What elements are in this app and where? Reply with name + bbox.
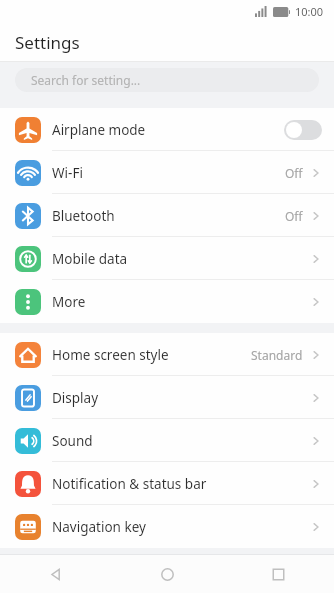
- button[interactable]: Wi-Fi: [0, 151, 334, 194]
- button[interactable]: Navigation key: [0, 505, 334, 548]
- staticText: Bluetooth: [52, 207, 285, 225]
- staticText: Standard: [251, 347, 303, 363]
- staticText: Navigation key: [52, 518, 310, 536]
- button[interactable]: Recents: [223, 555, 334, 593]
- staticText: Home screen style: [52, 346, 251, 364]
- button[interactable]: Back: [0, 555, 112, 593]
- staticText: Airplane mode: [52, 121, 284, 139]
- button[interactable]: Mobile data: [0, 237, 334, 280]
- staticText: Mobile data: [52, 250, 310, 268]
- button[interactable]: Sound: [0, 419, 334, 462]
- button[interactable]: Search for setting...: [15, 68, 319, 92]
- button[interactable]: Airplane mode: [0, 108, 334, 151]
- staticText: Off: [285, 208, 303, 224]
- button[interactable]: Home: [112, 555, 223, 593]
- staticText: Notification & status bar: [52, 475, 310, 493]
- button[interactable]: Bluetooth: [0, 194, 334, 237]
- staticText: More: [52, 293, 310, 311]
- button[interactable]: More: [0, 280, 334, 323]
- button[interactable]: Airplane mode toggle: [284, 120, 322, 140]
- button[interactable]: Home screen style: [0, 333, 334, 376]
- button[interactable]: Notification & status bar: [0, 462, 334, 505]
- staticText: Search for setting...: [31, 72, 141, 88]
- staticText: Wi-Fi: [52, 164, 285, 182]
- staticText: 10:00: [295, 4, 324, 19]
- staticText: Settings: [15, 31, 80, 54]
- staticText: Display: [52, 389, 310, 407]
- button[interactable]: Display: [0, 376, 334, 419]
- staticText: Sound: [52, 432, 310, 450]
- staticText: Off: [285, 165, 303, 181]
